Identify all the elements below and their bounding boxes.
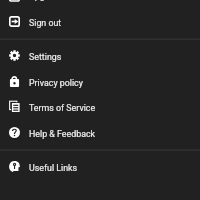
button[interactable]: Useful Links xyxy=(0,154,200,179)
staticText: Privacy policy xyxy=(29,78,83,88)
button[interactable]: Sign out xyxy=(0,9,200,34)
staticText: Useful Links xyxy=(29,163,78,173)
button[interactable]: Privacy policy xyxy=(0,69,200,94)
staticText: Help & Feedback xyxy=(29,129,96,139)
other: Sign out xyxy=(0,9,29,34)
staticText: Terms of Service xyxy=(29,103,96,113)
button[interactable]: Settings xyxy=(0,43,200,68)
staticText: Settings xyxy=(29,52,62,62)
other: Useful Links xyxy=(0,154,29,179)
other: Help & Feedback xyxy=(0,120,29,145)
other: Settings xyxy=(0,43,29,68)
staticText: Sign out xyxy=(29,18,62,28)
other: Terms of Service xyxy=(0,94,29,119)
button[interactable]: Upgrade xyxy=(0,0,200,9)
button[interactable]: Help & Feedback xyxy=(0,120,200,145)
button[interactable]: Terms of Service xyxy=(0,94,200,119)
staticText: Upgrade xyxy=(29,0,62,1)
other: Upgrade xyxy=(0,0,29,9)
other: Privacy policy xyxy=(0,69,29,94)
